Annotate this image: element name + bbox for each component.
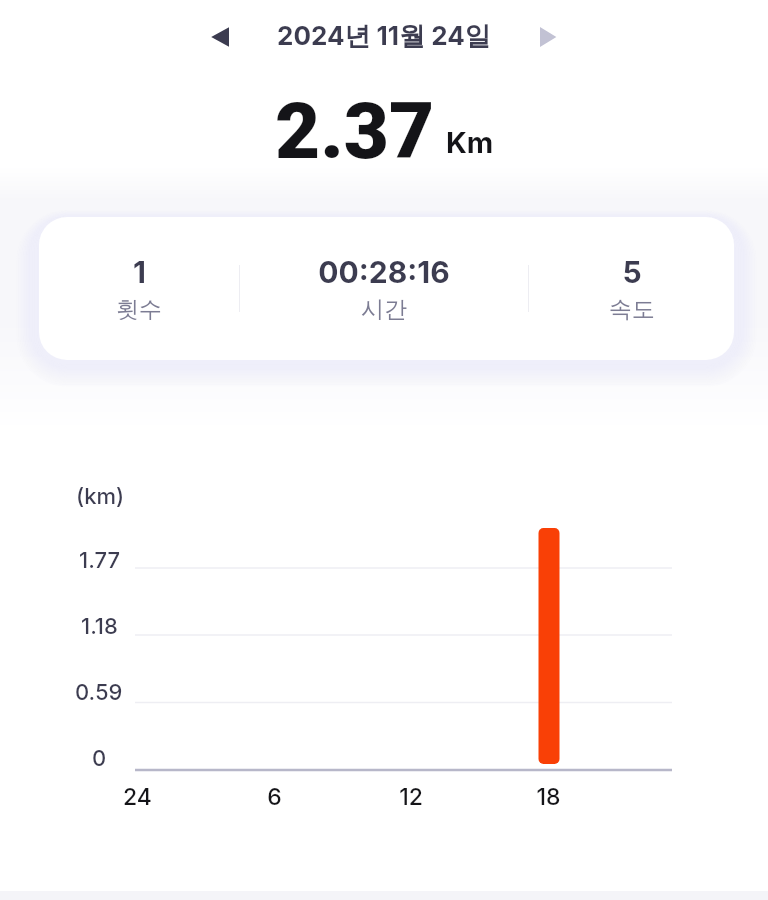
staticText: 12	[399, 783, 423, 811]
button[interactable]: Next day	[525, 15, 569, 59]
staticText: 시간	[361, 295, 407, 324]
staticText: (km)	[76, 483, 125, 510]
staticText: 6	[267, 783, 282, 811]
staticText: 2024년 11월 24일	[277, 20, 491, 53]
staticText: 18	[536, 783, 561, 811]
staticText: 00:28:16	[318, 254, 450, 290]
staticText: 0	[92, 745, 107, 772]
staticText: 1.77	[79, 547, 120, 574]
staticText: 24	[123, 783, 152, 811]
staticText: 속도	[609, 295, 655, 324]
button[interactable]: 00:28:16	[240, 217, 528, 360]
button[interactable]: Previous day	[199, 15, 243, 59]
staticText: 횟수	[116, 295, 162, 324]
staticText: 0.59	[75, 679, 123, 706]
staticText: 5	[622, 254, 642, 290]
staticText: Km	[446, 125, 494, 160]
staticText: 2.37	[275, 86, 435, 177]
button[interactable]: 5	[529, 217, 734, 360]
button[interactable]: 1	[39, 217, 239, 360]
staticText: 1	[133, 254, 146, 290]
staticText: 1.18	[81, 613, 118, 640]
